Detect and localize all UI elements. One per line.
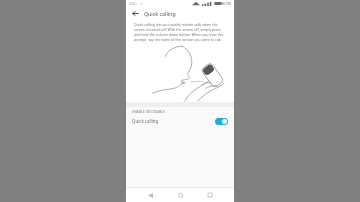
button[interactable]: Recents (204, 189, 216, 201)
button[interactable]: Quick calling toggle, on (215, 118, 228, 125)
staticText: LGU+ (129, 2, 138, 6)
staticText: 1:30 PM (219, 2, 231, 6)
staticText: Quick calling (144, 10, 176, 17)
staticText: Quick calling (132, 118, 159, 124)
button[interactable]: Back (144, 189, 156, 201)
button[interactable]: Home (174, 189, 186, 201)
staticText: Quick calling lets you quickly initiate … (134, 22, 226, 42)
staticText: ENABLE OR DISABLE (132, 109, 165, 114)
button[interactable]: Quick calling (126, 115, 234, 127)
button[interactable]: Back (130, 8, 141, 19)
